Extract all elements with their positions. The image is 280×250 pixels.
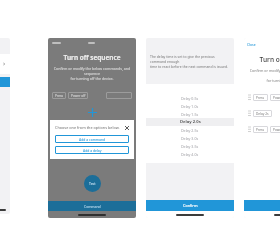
staticText: Turn off sequence [244, 55, 280, 64]
button[interactable]: Delay 3.5s [146, 142, 234, 150]
staticText: Delay 4.0s [181, 152, 199, 157]
button[interactable] [106, 92, 132, 99]
staticText: Delay 1.5s [181, 112, 199, 117]
staticText: Delay 3.5s [181, 144, 199, 149]
staticText: Turn off sequence [48, 53, 136, 62]
staticText: Choose one from the options below. [55, 125, 120, 130]
staticText: Delay 3.0s [181, 136, 199, 141]
button[interactable]: Add step [88, 108, 97, 117]
staticText: Command [84, 204, 101, 209]
staticText: Power off [273, 128, 280, 132]
staticText: Confirm [183, 203, 198, 208]
button[interactable]: Delay 1.5s [146, 110, 234, 118]
staticText: Test [89, 181, 96, 186]
button[interactable]: Press [52, 92, 66, 99]
button[interactable]: Delay 2.5s [146, 126, 234, 134]
staticText: Delay 2.5s [181, 128, 199, 133]
staticText: Confirm or modify the below commands, an… [53, 66, 131, 81]
button[interactable]: Press [248, 93, 280, 102]
button[interactable]: Delay 2s [248, 109, 280, 118]
staticText: Delay 2.0s [180, 119, 201, 125]
button[interactable]: Test [84, 175, 101, 192]
button[interactable]: Add a command [55, 135, 129, 143]
button[interactable]: Close [247, 42, 256, 47]
staticText: Delay 1.0s [181, 104, 199, 109]
staticText: The delay time is set to give the previo… [150, 54, 230, 69]
staticText: Add a delay [83, 148, 102, 153]
button[interactable]: Delay 0.5s [146, 94, 234, 102]
staticText: Power off [273, 96, 280, 100]
staticText: Add a command [79, 137, 106, 142]
staticText: Delay 0.5s [181, 96, 199, 101]
button[interactable]: Delay 4.0s [146, 150, 234, 158]
button[interactable]: Confirm [146, 200, 234, 211]
staticText: Press [55, 94, 64, 98]
button[interactable]: Delay 2.0s [146, 118, 234, 126]
button[interactable]: Delay 1.0s [146, 102, 234, 110]
button[interactable]: Close [125, 126, 129, 130]
staticText: Press [256, 128, 265, 132]
staticText: Delay 2s [256, 112, 269, 116]
button[interactable]: Back [52, 42, 61, 44]
staticText: Confirm or modify the below commands, an… [249, 68, 280, 83]
button[interactable]: Open [0, 54, 10, 74]
staticText: Power off [71, 94, 86, 98]
staticText: Press [256, 96, 265, 100]
button[interactable]: Press [248, 125, 280, 134]
button[interactable]: Power off [68, 92, 88, 99]
staticText: Close [247, 42, 256, 47]
other: Open [2, 62, 6, 66]
button[interactable]: Add a delay [55, 146, 129, 154]
button[interactable]: Delay 3.0s [146, 134, 234, 142]
button[interactable]: Command [48, 201, 136, 211]
